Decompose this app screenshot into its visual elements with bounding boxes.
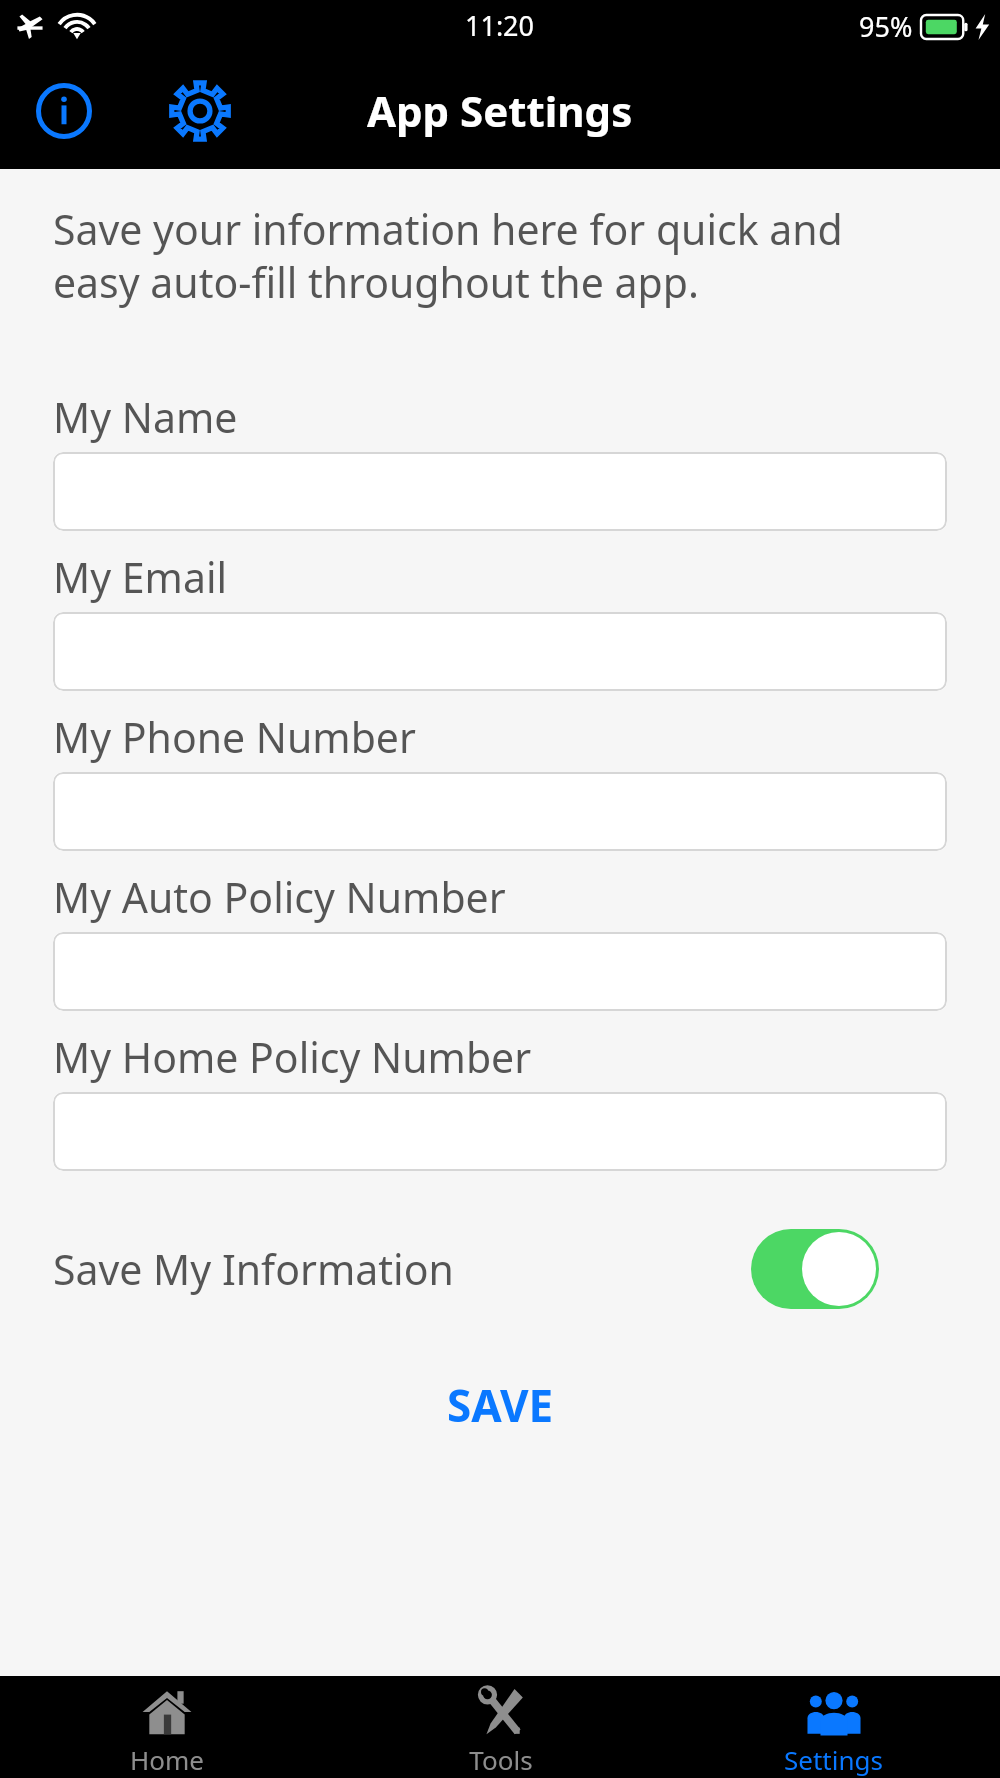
staticText: My Phone Number: [53, 709, 416, 765]
staticText: Tools: [469, 1742, 533, 1777]
staticText: My Home Policy Number: [53, 1029, 532, 1085]
button[interactable]: Home: [0, 1676, 334, 1778]
button[interactable]: SAVE: [0, 1365, 1000, 1445]
button[interactable]: Settings: [164, 75, 236, 147]
staticText: 95%: [859, 8, 913, 45]
button[interactable]: [53, 452, 947, 531]
button[interactable]: [53, 612, 947, 691]
staticText: 11:20: [465, 7, 535, 44]
button[interactable]: Tools: [334, 1676, 667, 1778]
button[interactable]: Save My Information toggle: [751, 1229, 879, 1309]
button[interactable]: Information: [30, 77, 98, 145]
button[interactable]: [53, 932, 947, 1011]
button[interactable]: Settings: [667, 1676, 1000, 1778]
staticText: Save your information here for quick and…: [53, 201, 940, 310]
button[interactable]: [53, 772, 947, 851]
staticText: SAVE: [447, 1375, 554, 1435]
staticText: Settings: [784, 1742, 883, 1777]
staticText: Save My Information: [53, 1241, 454, 1297]
staticText: My Name: [53, 389, 238, 445]
staticText: Home: [130, 1742, 204, 1777]
button[interactable]: [53, 1092, 947, 1171]
staticText: My Email: [53, 549, 228, 605]
staticText: App Settings: [367, 82, 633, 139]
staticText: My Auto Policy Number: [53, 869, 506, 925]
